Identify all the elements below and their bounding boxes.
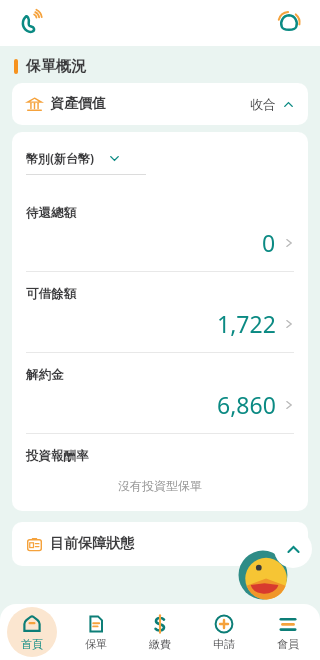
- button[interactable]: Call: [14, 6, 48, 40]
- button[interactable]: 待還總額: [26, 191, 294, 271]
- button[interactable]: Scroll to top: [274, 530, 312, 568]
- staticText: 1,722: [217, 308, 276, 339]
- button[interactable]: 資產價值: [12, 83, 308, 125]
- staticText: 收合: [250, 96, 276, 112]
- button[interactable]: 會員: [256, 604, 320, 660]
- staticText: 首頁: [21, 637, 43, 651]
- staticText: 6,860: [217, 389, 276, 420]
- staticText: 會員: [277, 637, 299, 651]
- staticText: 可借餘額: [26, 286, 76, 302]
- staticText: 保單: [85, 637, 107, 651]
- button[interactable]: Notifications: [272, 6, 306, 40]
- staticText: 保單概況: [26, 57, 86, 76]
- button[interactable]: 首頁: [0, 604, 64, 660]
- button[interactable]: 幣別(新台幣): [26, 150, 146, 175]
- staticText: 繳費: [149, 637, 171, 651]
- button[interactable]: 可借餘額: [26, 272, 294, 352]
- staticText: 目前保障狀態: [50, 535, 134, 553]
- staticText: 投資報酬率: [26, 448, 89, 464]
- button[interactable]: 解約金: [26, 353, 294, 433]
- staticText: 申請: [213, 637, 235, 651]
- staticText: 解約金: [26, 367, 64, 383]
- staticText: 幣別(新台幣): [26, 150, 95, 166]
- button[interactable]: 繳費: [128, 604, 192, 660]
- button[interactable]: 目前保障狀態: [12, 522, 308, 566]
- button[interactable]: 保單: [64, 604, 128, 660]
- button[interactable]: 申請: [192, 604, 256, 660]
- staticText: 待還總額: [26, 205, 76, 221]
- staticText: 資產價值: [50, 95, 106, 113]
- staticText: 沒有投資型保單: [26, 478, 294, 493]
- staticText: 0: [262, 227, 276, 258]
